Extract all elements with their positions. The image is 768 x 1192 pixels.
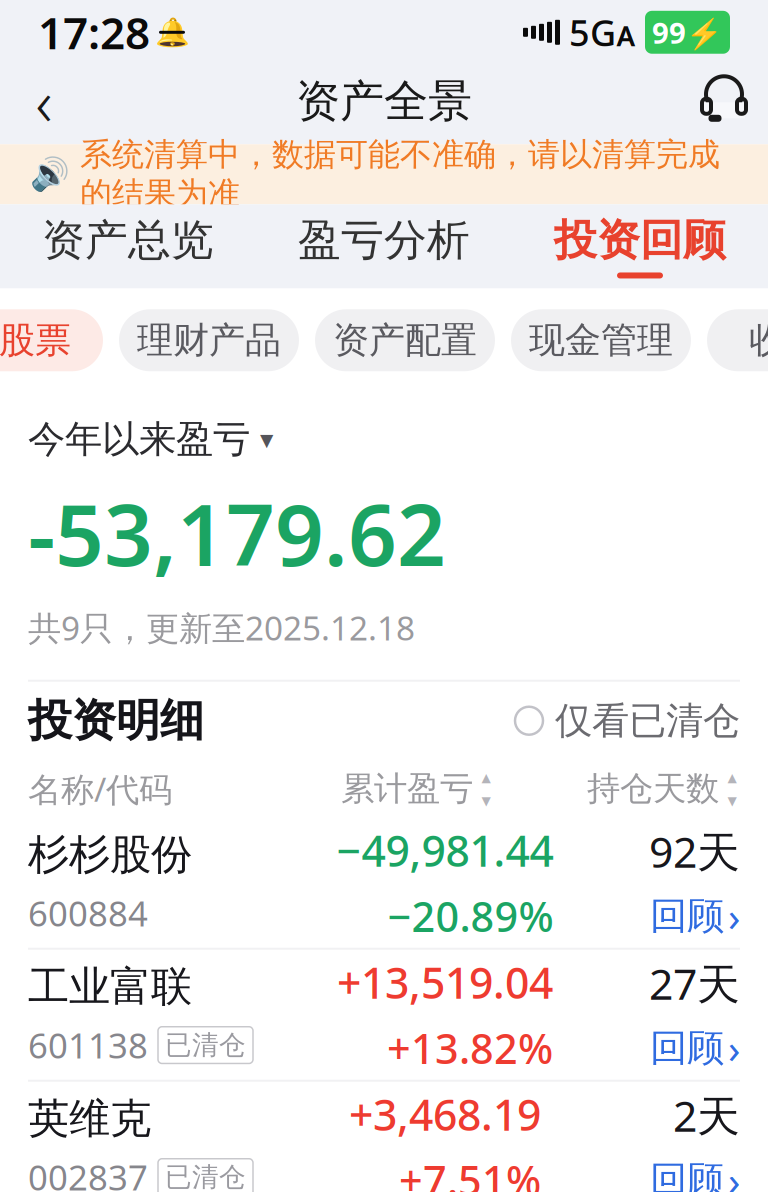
button[interactable]: 英维克 (0, 1082, 768, 1192)
staticText: 盈亏分析 (298, 214, 470, 266)
staticText: 002837 (28, 1154, 148, 1192)
staticText: 资产总览 (42, 214, 214, 266)
staticText: +7.51% (399, 1153, 541, 1192)
staticText: ▴ (727, 766, 736, 788)
staticText: −49,981.44 (336, 822, 553, 879)
staticText: ▾ (481, 790, 490, 811)
staticText: 现金管理 (529, 318, 673, 362)
staticText: 收 (749, 318, 768, 362)
staticText: 17:28 (38, 3, 150, 61)
staticText: 股票 (0, 318, 71, 362)
button[interactable]: 投资回顾 (512, 204, 768, 288)
button[interactable]: 累计盈亏 (341, 768, 494, 809)
staticText: ▾ (260, 424, 273, 454)
staticText: 已清仓 (165, 1029, 246, 1061)
staticText: 共9只，更新至2025.12.18 (28, 605, 415, 650)
button[interactable]: 杉杉股份 (0, 818, 768, 948)
button[interactable]: 盈亏分析 (256, 204, 512, 288)
staticText: +13,519.04 (337, 954, 553, 1011)
staticText: 投资回顾 (554, 214, 726, 266)
staticText: 601138 (28, 1022, 148, 1068)
staticText: ▴ (481, 766, 490, 788)
staticText: 今年以来盈亏 (28, 416, 250, 462)
staticText: 🔔 (154, 16, 189, 48)
staticText: 🔊 (30, 156, 70, 193)
button[interactable]: Customer service (692, 69, 756, 133)
staticText: 92天 (649, 823, 740, 879)
staticText: -53,179.62 (28, 476, 446, 589)
button[interactable]: 资产总览 (0, 204, 256, 288)
staticText: 仅看已清仓 (555, 698, 740, 744)
button[interactable]: 现金管理 (511, 309, 691, 371)
button[interactable]: 工业富联 (0, 950, 768, 1080)
staticText: 回顾 (650, 1157, 724, 1192)
staticText: 累计盈亏 (341, 768, 473, 809)
staticText: 27天 (649, 955, 740, 1011)
staticText: ▾ (727, 790, 736, 811)
button[interactable]: Back (12, 69, 76, 133)
staticText: +3,468.19 (349, 1086, 541, 1143)
staticText: 理财产品 (137, 318, 281, 362)
staticText: 持仓天数 (587, 768, 719, 809)
staticText: 回顾 (650, 893, 724, 939)
staticText: +13.82% (387, 1021, 553, 1075)
staticText: › (728, 1021, 740, 1075)
staticText: 2天 (673, 1087, 740, 1143)
staticText: ‹ (35, 59, 52, 144)
button[interactable]: 理财产品 (119, 309, 299, 371)
staticText: 600884 (28, 890, 148, 936)
staticText: 系统清算中，数据可能不准确，请以清算完成的结果为准 (80, 135, 720, 214)
staticText: 5Gᴀ (569, 8, 636, 56)
staticText: 杉杉股份 (28, 829, 192, 880)
button[interactable]: 今年以来盈亏 (28, 416, 273, 462)
staticText: › (728, 1153, 740, 1192)
button[interactable]: 资产配置 (315, 309, 495, 371)
staticText: › (728, 889, 740, 943)
button[interactable]: 收 (707, 309, 768, 371)
button[interactable]: 持仓天数 (587, 768, 740, 809)
staticText: 已清仓 (165, 1161, 246, 1192)
staticText: 英维克 (28, 1093, 151, 1144)
staticText: 资产配置 (333, 318, 477, 362)
staticText: 投资明细 (28, 694, 204, 748)
staticText: 工业富联 (28, 961, 192, 1012)
button[interactable]: 仅看已清仓 (515, 698, 740, 744)
staticText: 回顾 (650, 1025, 724, 1071)
staticText: −20.89% (387, 889, 553, 943)
staticText: 99⚡ (652, 13, 723, 52)
staticText: 名称/代码 (28, 767, 172, 811)
button[interactable]: 股票 (0, 309, 103, 371)
staticText: 资产全景 (296, 74, 472, 128)
